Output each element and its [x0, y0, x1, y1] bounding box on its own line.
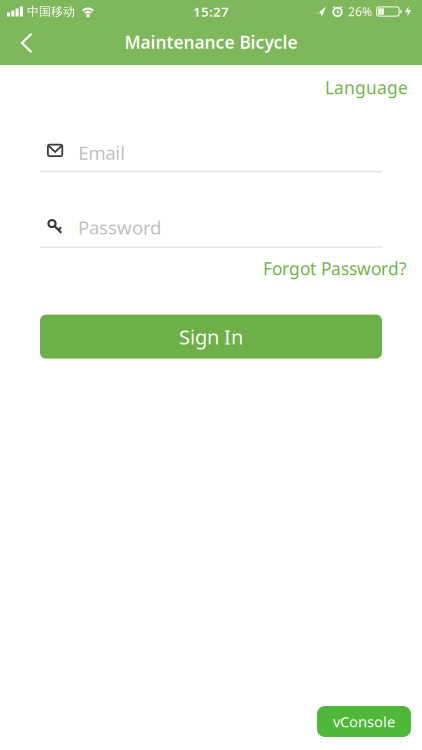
- button[interactable]: Forgot Password?: [263, 257, 407, 280]
- staticText: Maintenance Bicycle: [124, 30, 297, 53]
- button[interactable]: Back: [0, 25, 44, 65]
- staticText: Password: [78, 215, 161, 240]
- button[interactable]: vConsole: [317, 706, 411, 737]
- staticText: Forgot Password?: [263, 257, 407, 280]
- staticText: vConsole: [333, 712, 395, 731]
- staticText: Email: [78, 140, 125, 165]
- staticText: 中国移动: [27, 4, 75, 19]
- staticText: Language: [325, 76, 408, 99]
- staticText: Sign In: [179, 323, 243, 350]
- button[interactable]: Language: [325, 76, 408, 99]
- staticText: 26%: [348, 3, 372, 19]
- staticText: 15:27: [193, 3, 229, 20]
- button[interactable]: Sign In: [40, 315, 382, 359]
